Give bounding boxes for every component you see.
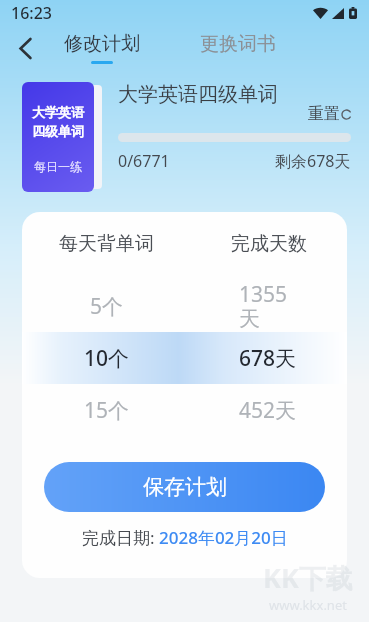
staticText: 完成天数 xyxy=(231,232,307,256)
button[interactable]: 更换词书 xyxy=(200,32,276,64)
button[interactable]: 大学英语 xyxy=(22,82,94,192)
staticText: 保存计划 xyxy=(143,474,227,500)
button[interactable]: 保存计划 xyxy=(44,462,325,512)
staticText: 修改计划 xyxy=(64,32,140,56)
staticText: 剩余678天 xyxy=(275,150,351,172)
staticText: 重置 xyxy=(308,104,340,124)
staticText: 10个 xyxy=(84,344,130,373)
staticText: 更换词书 xyxy=(200,32,276,56)
staticText: 16:23 xyxy=(11,2,52,24)
staticText: 0/6771 xyxy=(118,150,170,172)
button[interactable]: 10个 xyxy=(22,332,347,384)
staticText: www.kkx.net xyxy=(269,596,347,614)
staticText: 每日一练 xyxy=(34,159,82,174)
button[interactable]: 5个 xyxy=(22,280,347,332)
staticText: 15个 xyxy=(84,396,130,425)
staticText: 大学英语四级单词 xyxy=(118,82,278,107)
staticText: 2028年02月20日 xyxy=(159,526,288,549)
button[interactable]: 15个 xyxy=(22,384,347,436)
staticText: 大学英语 xyxy=(32,104,84,120)
staticText: KK下载 xyxy=(263,559,353,596)
staticText: 每天背单词 xyxy=(59,232,154,256)
button[interactable]: 重置 xyxy=(308,104,351,124)
staticText: 452天 xyxy=(239,396,297,425)
staticText: 678天 xyxy=(239,344,297,373)
staticText: 四级单词 xyxy=(32,123,84,139)
staticText: 5个 xyxy=(90,292,124,321)
staticText: 1355天 xyxy=(239,280,299,332)
button[interactable]: 修改计划 xyxy=(64,32,140,64)
staticText: 完成日期: xyxy=(82,526,159,549)
button[interactable]: Back xyxy=(8,31,42,65)
